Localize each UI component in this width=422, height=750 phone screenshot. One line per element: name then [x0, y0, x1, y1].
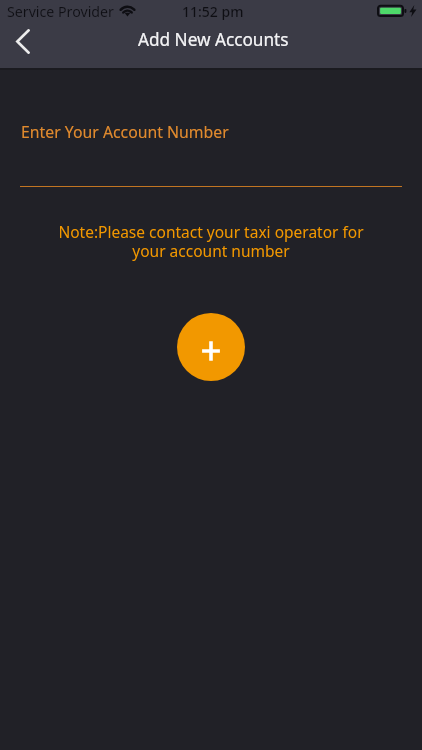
staticText: Service Provider: [7, 2, 114, 21]
button[interactable]: Add account: [177, 313, 245, 381]
staticText: 11:52 pm: [182, 2, 244, 21]
button[interactable]: Back: [0, 18, 46, 64]
staticText: Note:Please contact your taxi operator f…: [0, 221, 422, 262]
button[interactable]: Enter Your Account Number: [0, 109, 422, 187]
staticText: Add New Accounts: [138, 28, 289, 51]
staticText: Enter Your Account Number: [21, 121, 229, 143]
